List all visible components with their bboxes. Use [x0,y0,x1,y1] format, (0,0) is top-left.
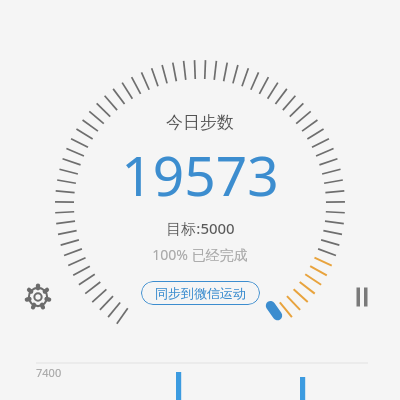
staticText: 目标:5000 [166,218,235,238]
staticText: 100% 已经完成 [152,245,248,264]
staticText: 今日步数 [166,112,234,133]
staticText: 7400 [36,365,62,380]
button[interactable]: Pause [342,277,382,317]
button[interactable]: 同步到微信运动 [141,281,260,305]
staticText: 19573 [121,137,279,212]
button[interactable]: Settings [18,277,58,317]
staticText: 同步到微信运动 [155,285,246,301]
